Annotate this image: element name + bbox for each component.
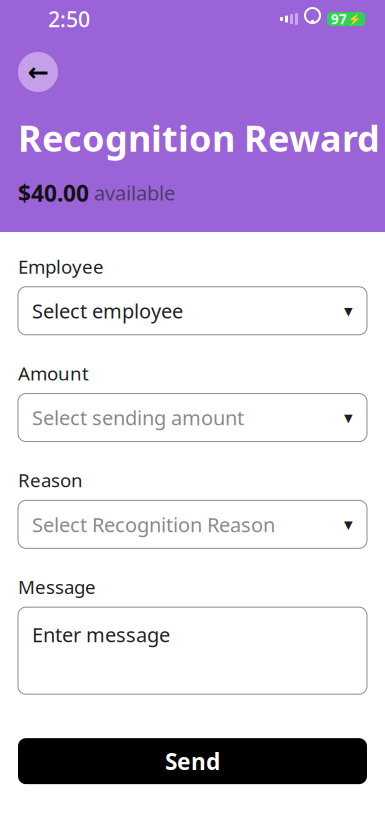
staticText: Select Recognition Reason: [32, 511, 275, 538]
button[interactable]: Select sending amount: [18, 394, 367, 442]
staticText: ▾: [344, 301, 353, 321]
staticText: Reason: [18, 468, 83, 492]
staticText: ←: [27, 58, 48, 86]
staticText: Employee: [18, 254, 104, 279]
staticText: ⚡: [348, 13, 361, 25]
staticText: Send: [165, 746, 220, 776]
staticText: ▾: [344, 514, 353, 534]
button[interactable]: Select employee: [18, 287, 367, 335]
staticText: Select employee: [32, 297, 183, 324]
staticText: Message: [18, 574, 96, 599]
button[interactable]: Send: [18, 738, 367, 784]
staticText: ▾: [344, 408, 353, 427]
button[interactable]: Back: [18, 52, 58, 92]
staticText: $40.00: [18, 178, 89, 208]
staticText: 97: [331, 10, 347, 28]
button[interactable]: Select Recognition Reason: [18, 500, 367, 548]
staticText: Recognition Reward: [18, 114, 380, 162]
staticText: Amount: [18, 361, 89, 386]
staticText: 2:50: [48, 5, 90, 33]
staticText: Select sending amount: [32, 404, 244, 431]
button[interactable]: Enter message: [18, 607, 367, 694]
staticText: Enter message: [32, 621, 170, 648]
staticText: available: [94, 180, 175, 206]
